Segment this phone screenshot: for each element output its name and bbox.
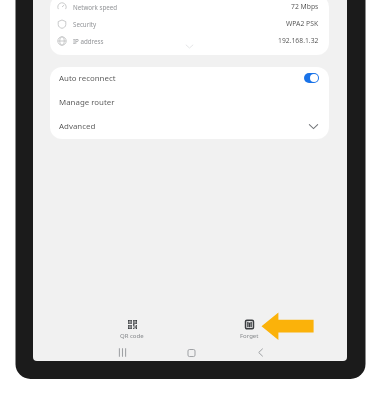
button[interactable]: Home <box>180 343 202 361</box>
button[interactable]: QR code <box>108 317 156 343</box>
staticText: QR code <box>120 332 144 340</box>
button[interactable]: Advanced <box>50 114 329 138</box>
staticText: Advanced <box>59 121 96 132</box>
staticText: Network speed <box>73 3 118 11</box>
button[interactable]: Recent apps <box>111 343 133 361</box>
staticText: 192.168.1.32 <box>278 36 319 45</box>
button[interactable]: IP address <box>50 32 329 49</box>
staticText: Security <box>73 20 97 28</box>
staticText: IP address <box>73 37 104 45</box>
staticText: Auto reconnect <box>59 73 116 84</box>
button[interactable]: Back <box>249 343 271 361</box>
staticText: 72 Mbps <box>291 2 319 11</box>
button[interactable]: Manage router <box>50 90 329 114</box>
button[interactable]: Auto reconnect <box>50 67 329 90</box>
button[interactable]: Security <box>50 15 329 32</box>
staticText: Forget <box>240 332 259 340</box>
staticText: WPA2 PSK <box>286 19 319 28</box>
button[interactable]: Forget <box>225 317 273 343</box>
staticText: Manage router <box>59 97 115 108</box>
button[interactable]: Network speed <box>50 0 329 15</box>
